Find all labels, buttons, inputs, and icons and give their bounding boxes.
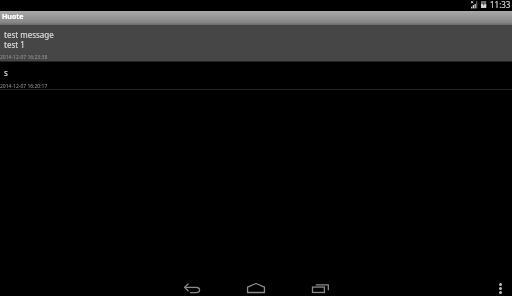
button[interactable]: Recent apps xyxy=(304,280,336,296)
button[interactable]: Home xyxy=(240,280,272,296)
staticText: 2014-12-07 16:23:38 xyxy=(0,54,48,61)
button[interactable]: test message test 1 xyxy=(0,25,512,62)
button[interactable]: Huote xyxy=(0,11,512,25)
button[interactable]: More options xyxy=(489,280,511,296)
staticText: Huote xyxy=(2,12,24,22)
staticText: s xyxy=(4,67,8,78)
staticText: 2014-12-07 16:20:17 xyxy=(0,83,48,90)
button[interactable]: s xyxy=(0,62,512,90)
button[interactable]: Back xyxy=(176,280,208,296)
staticText: test message test 1 xyxy=(4,29,54,50)
staticText: 11:33 xyxy=(490,0,511,10)
